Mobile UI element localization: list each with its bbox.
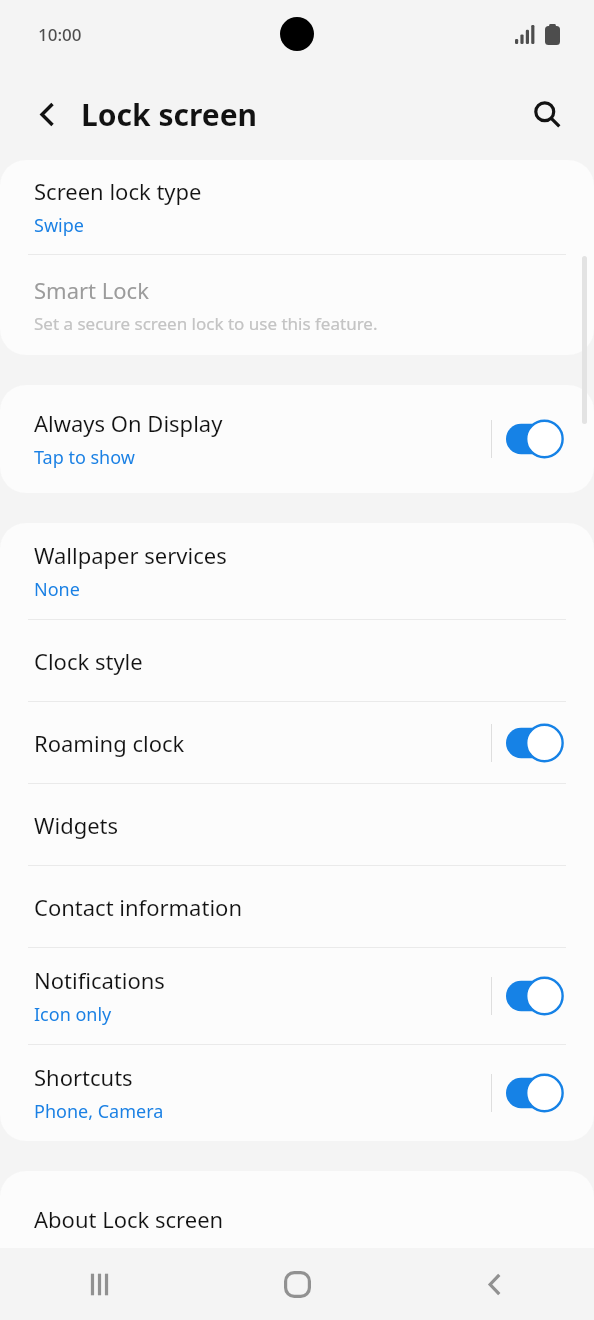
button[interactable]: Clock style [0,620,594,701]
button[interactable]: Wallpaper services [0,523,594,619]
button[interactable]: Roaming clock [0,702,594,783]
staticText: Tap to show [34,445,135,470]
staticText: Swipe [34,213,84,238]
staticText: Roaming clock [34,728,185,758]
button[interactable]: Home [198,1248,396,1320]
staticText: Phone, Camera [34,1099,164,1124]
button[interactable]: Contact information [0,866,594,947]
button[interactable]: Search [520,87,574,141]
button[interactable]: Always On Display switch [506,416,572,462]
staticText: Smart Lock [34,275,149,305]
button[interactable]: About Lock screen [0,1171,594,1251]
button[interactable]: Always On Display [0,385,594,493]
staticText: Screen lock type [34,176,202,206]
staticText: Icon only [34,1002,112,1027]
button[interactable]: Back [396,1248,594,1320]
staticText: 10:00 [38,23,82,46]
button[interactable]: Notifications switch [506,973,572,1019]
staticText: Wallpaper services [34,540,227,570]
button[interactable]: Shortcuts [0,1045,594,1141]
button[interactable]: Navigate up [20,87,74,141]
staticText: Widgets [34,810,119,840]
staticText: About Lock screen [34,1204,224,1234]
button[interactable]: Roaming clock switch [506,720,572,766]
staticText: Always On Display [34,408,223,438]
staticText: Lock screen [81,94,258,135]
staticText: Clock style [34,646,143,676]
staticText: Set a secure screen lock to use this fea… [34,312,378,335]
button[interactable]: Smart Lock [0,255,594,355]
staticText: Notifications [34,965,165,995]
button[interactable]: Shortcuts switch [506,1070,572,1116]
button[interactable]: Screen lock type [0,160,594,254]
staticText: Contact information [34,892,242,922]
staticText: Shortcuts [34,1062,133,1092]
button[interactable]: Recent apps [0,1248,198,1320]
button[interactable]: Widgets [0,784,594,865]
button[interactable]: Notifications [0,948,594,1044]
staticText: None [34,577,80,602]
